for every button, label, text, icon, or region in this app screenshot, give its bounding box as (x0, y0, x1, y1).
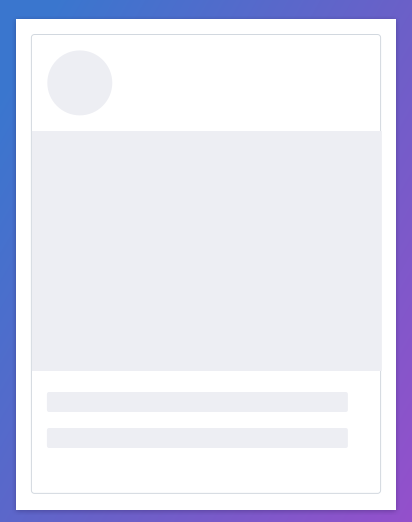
button[interactable]: Loading content (31, 34, 381, 494)
